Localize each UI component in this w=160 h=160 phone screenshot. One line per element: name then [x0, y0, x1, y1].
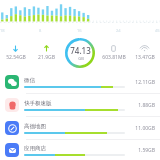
staticText: 24 — [116, 28, 121, 33]
staticText: 1.88GB — [129, 102, 155, 109]
staticText: 1.59GB — [129, 147, 155, 154]
staticText: 高德地图 — [24, 123, 46, 130]
button[interactable]: Wi-Fi — [129, 34, 160, 71]
staticText: 8 — [39, 28, 42, 33]
staticText: 13.47GB — [135, 54, 155, 61]
staticText: GB — [78, 56, 84, 61]
staticText: 应用商店 — [24, 145, 46, 152]
other: Download — [12, 45, 19, 52]
other: Mobile data — [110, 45, 117, 52]
button[interactable]: Upload — [31, 34, 62, 71]
staticText: 快手极速版 — [24, 100, 52, 107]
other: Wi-Fi — [141, 45, 148, 52]
staticText: 12.11GB — [129, 79, 155, 86]
staticText: 16 — [77, 28, 82, 33]
button[interactable]: 微信 — [0, 71, 160, 93]
staticText: 微信 — [24, 77, 35, 84]
staticText: 18 — [0, 28, 5, 33]
button[interactable]: 74.13 — [65, 38, 95, 68]
button[interactable]: 应用商店 — [0, 140, 160, 160]
button[interactable]: 快手极速版 — [0, 94, 160, 116]
staticText: 11.00GB — [129, 125, 155, 132]
other: Upload — [43, 45, 50, 52]
staticText: 45 — [155, 28, 160, 33]
staticText: 21.9GB — [38, 54, 55, 61]
staticText: 74.13 — [70, 45, 91, 56]
staticText: 603.81MB — [102, 54, 126, 61]
button[interactable]: 高德地图 — [0, 117, 160, 139]
button[interactable]: Mobile data — [98, 34, 129, 71]
button[interactable]: Download — [0, 34, 31, 71]
staticText: 52.54GB — [6, 54, 26, 61]
